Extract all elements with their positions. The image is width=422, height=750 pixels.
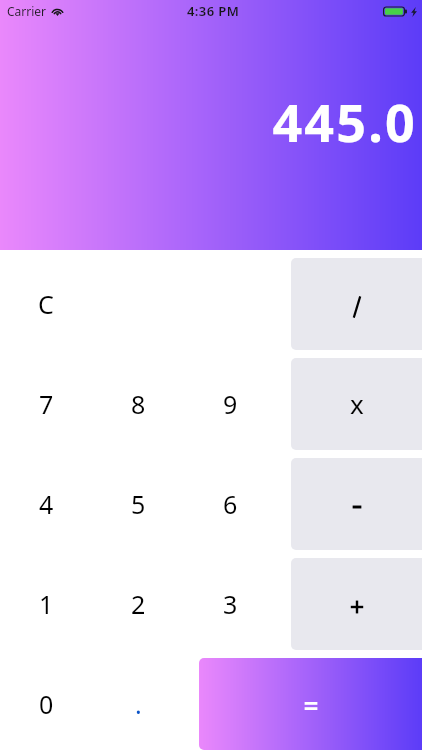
button[interactable]: Divide — [291, 258, 422, 350]
button[interactable]: 7 — [0, 350, 92, 450]
button[interactable]: C — [0, 250, 92, 350]
staticText: 5 — [131, 487, 146, 521]
staticText: . — [135, 687, 142, 721]
button[interactable]: Equals — [199, 658, 422, 750]
staticText: 4 — [39, 487, 54, 521]
staticText: 2 — [131, 587, 146, 621]
button[interactable]: . — [92, 650, 184, 750]
button[interactable]: Multiply — [291, 358, 422, 450]
button[interactable]: Subtract — [291, 458, 422, 550]
staticText: 6 — [223, 487, 238, 521]
staticText: 4:36 PM — [187, 2, 240, 20]
button[interactable]: 6 — [184, 450, 276, 550]
button[interactable]: 5 — [92, 450, 184, 550]
staticText: 7 — [39, 387, 54, 421]
staticText: 8 — [131, 387, 146, 421]
staticText: 9 — [223, 387, 238, 421]
staticText: 3 — [223, 587, 238, 621]
button[interactable]: 9 — [184, 350, 276, 450]
staticText: x — [350, 386, 364, 421]
button[interactable]: 3 — [184, 550, 276, 650]
button[interactable]: 8 — [92, 350, 184, 450]
button[interactable]: 4 — [0, 450, 92, 550]
button[interactable]: Add — [291, 558, 422, 650]
staticText: Carrier — [7, 3, 47, 19]
staticText: 1 — [39, 587, 54, 621]
staticText: 0 — [39, 687, 54, 721]
staticText: 445.0 — [272, 86, 417, 157]
button[interactable]: 1 — [0, 550, 92, 650]
button[interactable]: 0 — [0, 650, 92, 750]
staticText: C — [38, 287, 54, 321]
button[interactable]: 2 — [92, 550, 184, 650]
